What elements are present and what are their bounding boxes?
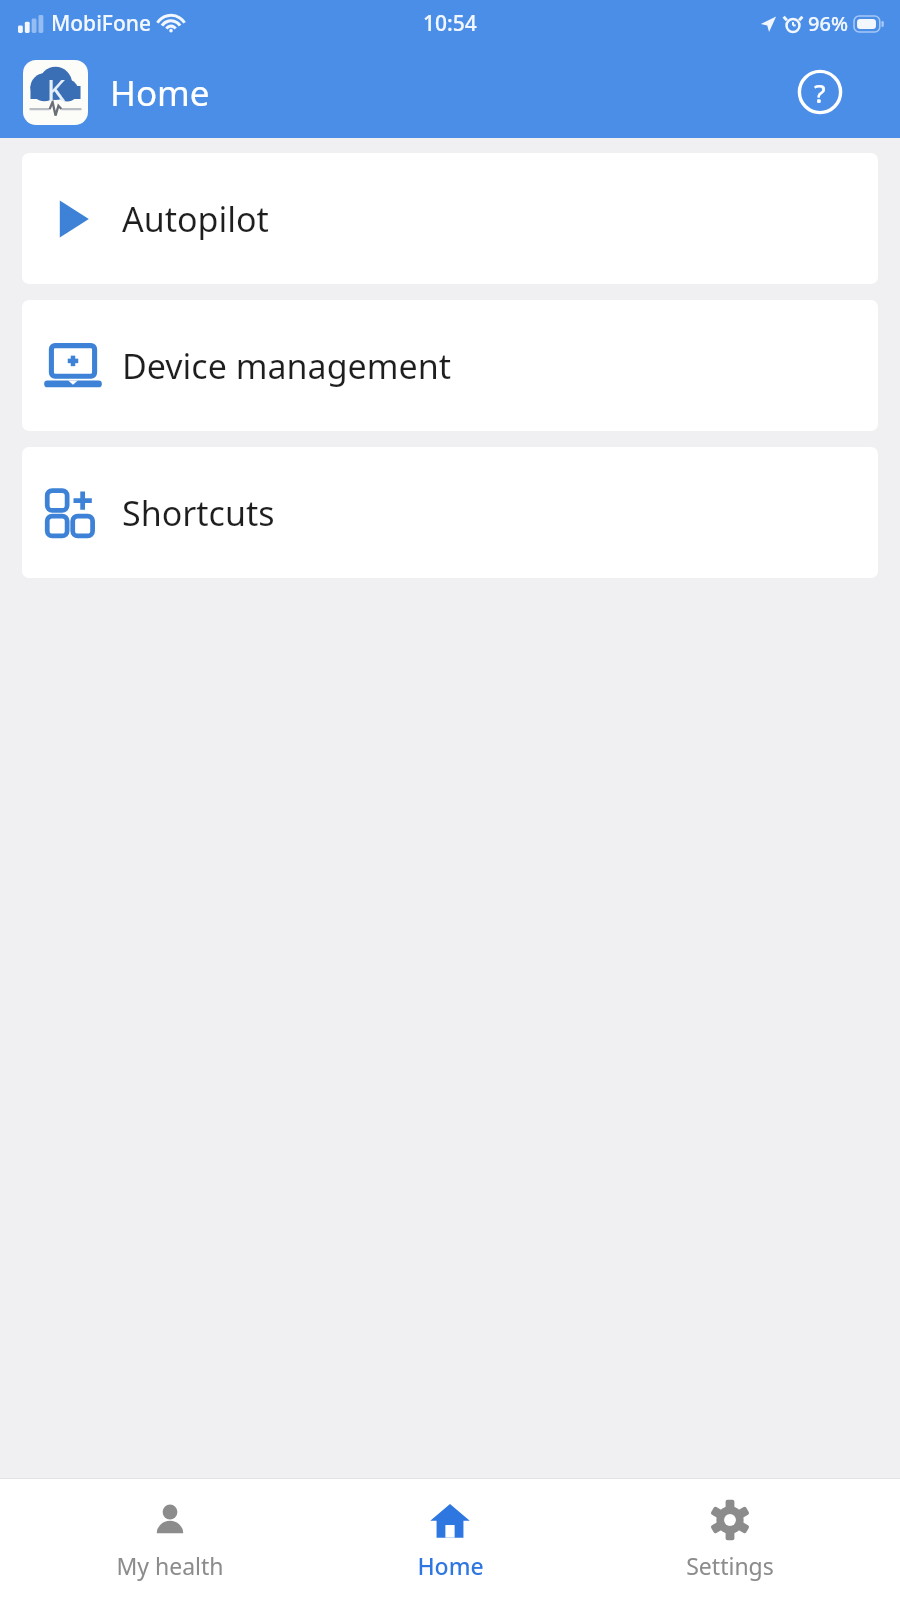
staticText: ? bbox=[814, 75, 826, 110]
staticText: Device management bbox=[122, 343, 451, 389]
button[interactable]: My health bbox=[60, 1479, 280, 1598]
staticText: K bbox=[47, 70, 65, 109]
button[interactable]: Device management bbox=[22, 300, 878, 431]
button[interactable]: Autopilot bbox=[22, 153, 878, 284]
staticText: Settings bbox=[686, 1550, 774, 1581]
button[interactable]: Help bbox=[796, 68, 844, 116]
staticText: Home bbox=[417, 1550, 484, 1581]
staticText: Autopilot bbox=[122, 196, 269, 242]
button[interactable]: Home bbox=[340, 1479, 560, 1598]
staticText: 96% bbox=[808, 10, 848, 37]
staticText: Shortcuts bbox=[122, 490, 275, 536]
staticText: MobiFone bbox=[51, 9, 151, 38]
button[interactable]: Settings bbox=[620, 1479, 840, 1598]
button[interactable]: Shortcuts bbox=[22, 447, 878, 578]
staticText: My health bbox=[116, 1550, 224, 1581]
staticText: 10:54 bbox=[423, 9, 477, 38]
staticText: Home bbox=[110, 69, 210, 117]
